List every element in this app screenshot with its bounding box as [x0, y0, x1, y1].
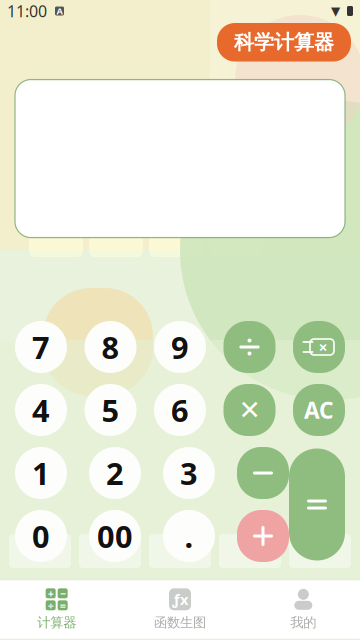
- staticText: ▼: [331, 4, 340, 18]
- button[interactable]: 2: [89, 447, 141, 499]
- button[interactable]: Plus: [237, 510, 289, 562]
- staticText: 函数生图: [154, 614, 206, 631]
- staticText: =: [60, 598, 66, 612]
- button[interactable]: ƒx: [118, 580, 242, 639]
- button[interactable]: 4: [15, 384, 67, 436]
- staticText: 2: [106, 453, 124, 493]
- staticText: 5: [101, 390, 119, 430]
- staticText: ƒx: [172, 590, 188, 609]
- staticText: −: [60, 586, 66, 600]
- button[interactable]: 6: [154, 384, 206, 436]
- staticText: 6: [171, 390, 189, 430]
- staticText: 3: [180, 453, 198, 493]
- staticText: 9: [171, 327, 189, 367]
- staticText: .: [184, 516, 193, 556]
- button[interactable]: Equals: [289, 448, 345, 560]
- button[interactable]: Minus: [237, 447, 289, 499]
- button[interactable]: 00: [89, 510, 141, 562]
- staticText: 8: [101, 327, 119, 367]
- button[interactable]: Multiply: [223, 384, 275, 436]
- button[interactable]: Backspace: [293, 321, 345, 373]
- button[interactable]: 我的: [242, 580, 360, 639]
- button[interactable]: Divide: [223, 321, 275, 373]
- button[interactable]: .: [163, 510, 215, 562]
- staticText: 0: [32, 516, 50, 556]
- staticText: 4: [32, 390, 50, 430]
- staticText: A: [56, 5, 62, 17]
- staticText: ✕: [238, 395, 260, 425]
- button[interactable]: 科学计算器: [217, 23, 351, 62]
- staticText: 1: [32, 453, 50, 493]
- staticText: AC: [304, 395, 334, 425]
- button[interactable]: 7: [15, 321, 67, 373]
- button[interactable]: AC: [293, 384, 345, 436]
- button[interactable]: 1: [15, 447, 67, 499]
- button[interactable]: +: [0, 580, 118, 639]
- button[interactable]: 0: [15, 510, 67, 562]
- staticText: 7: [32, 327, 50, 367]
- staticText: +: [48, 586, 54, 600]
- staticText: 11:00: [7, 0, 47, 22]
- staticText: ×: [318, 336, 327, 358]
- staticText: 计算器: [37, 614, 76, 631]
- staticText: ÷: [48, 598, 54, 612]
- button[interactable]: 9: [154, 321, 206, 373]
- staticText: 我的: [290, 614, 316, 631]
- button[interactable]: 5: [84, 384, 136, 436]
- staticText: 00: [97, 516, 133, 556]
- button[interactable]: 8: [84, 321, 136, 373]
- button[interactable]: 3: [163, 447, 215, 499]
- staticText: 科学计算器: [234, 30, 334, 55]
